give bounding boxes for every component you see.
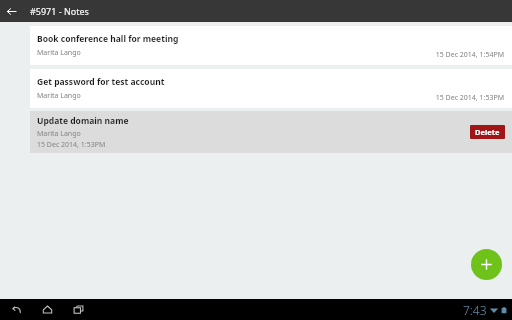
- button[interactable]: Book conference hall for meeting: [30, 26, 512, 65]
- button[interactable]: Get password for test account: [30, 69, 512, 108]
- button[interactable]: Back: [6, 299, 27, 320]
- staticText: 15 Dec 2014, 1:53PM: [37, 140, 106, 150]
- button[interactable]: Delete: [470, 125, 505, 139]
- button[interactable]: Home: [37, 299, 58, 320]
- staticText: 15 Dec 2014, 1:53PM: [435, 93, 504, 103]
- staticText: 7:43: [463, 302, 487, 318]
- staticText: Get password for test account: [37, 76, 165, 88]
- staticText: Book conference hall for meeting: [37, 33, 179, 45]
- button[interactable]: Back: [0, 0, 22, 22]
- staticText: 15 Dec 2014, 1:54PM: [435, 50, 504, 60]
- button[interactable]: Update domain name: [30, 111, 512, 153]
- staticText: #5971 - Notes: [30, 5, 89, 17]
- staticText: Delete: [475, 127, 500, 137]
- staticText: Update domain name: [37, 115, 129, 127]
- staticText: Marita Lango: [37, 129, 81, 139]
- staticText: Marita Lango: [37, 91, 81, 101]
- staticText: Marita Lango: [37, 48, 81, 58]
- button[interactable]: Recent apps: [68, 299, 89, 320]
- button[interactable]: Add note: [471, 249, 502, 280]
